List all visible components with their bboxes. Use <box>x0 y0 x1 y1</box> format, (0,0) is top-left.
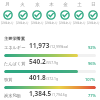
staticText: 主要栄養素 <box>4 36 25 41</box>
staticText: 1,384.5 <box>29 89 52 98</box>
staticText: 記録あり <box>31 21 44 25</box>
staticText: 火 <box>20 2 25 8</box>
other: Recorded <box>3 10 13 20</box>
staticText: 記録あり <box>73 21 86 25</box>
button[interactable]: 火 <box>15 2 30 25</box>
other: Recorded <box>46 10 56 20</box>
staticText: 96% <box>88 61 96 66</box>
button[interactable]: 土 <box>72 2 86 25</box>
staticText: 記録あり <box>87 21 100 25</box>
staticText: 日 <box>91 2 96 8</box>
staticText: /12,999kcal <box>50 44 69 49</box>
staticText: /372.1g <box>46 76 59 81</box>
staticText: 脂質 <box>4 77 13 82</box>
other: Recorded <box>60 10 70 20</box>
staticText: 金 <box>63 2 68 8</box>
staticText: 土 <box>77 2 82 8</box>
button[interactable]: 日 <box>86 2 100 25</box>
staticText: 月 <box>5 2 10 8</box>
staticText: 記録あり <box>59 21 72 25</box>
other: Recorded <box>74 10 84 20</box>
button[interactable]: エネルギー <box>4 41 96 57</box>
staticText: たんぱく質 <box>4 61 26 66</box>
staticText: /1,794.6g <box>52 92 67 97</box>
staticText: /557.9g <box>46 60 59 65</box>
button[interactable]: 金 <box>58 2 72 25</box>
staticText: 木 <box>49 2 54 8</box>
button[interactable]: 炭水化物 <box>4 89 96 100</box>
staticText: 92% <box>88 45 96 50</box>
other: Recorded <box>88 10 98 20</box>
button[interactable]: たんぱく質 <box>4 57 96 73</box>
button[interactable]: 月 <box>0 2 15 25</box>
staticText: 記録あり <box>16 21 29 25</box>
staticText: 記録あり <box>45 21 58 25</box>
button[interactable]: 木 <box>44 2 58 25</box>
staticText: 記録あり <box>1 21 14 25</box>
staticText: 77% <box>88 93 96 98</box>
staticText: 401.8 <box>29 73 46 82</box>
staticText: 水 <box>35 2 40 8</box>
other: Recorded <box>32 10 42 20</box>
other: Recorded <box>18 10 28 20</box>
staticText: 107% <box>85 77 96 82</box>
staticText: 11,973 <box>29 41 50 50</box>
button[interactable]: 脂質 <box>4 73 96 89</box>
staticText: 540.2 <box>29 57 46 66</box>
staticText: 炭水化物 <box>4 93 21 98</box>
staticText: エネルギー <box>4 45 26 50</box>
button[interactable]: 水 <box>30 2 44 25</box>
